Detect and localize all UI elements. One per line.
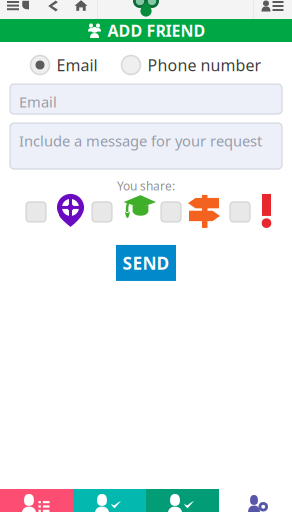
staticText: ADD FRIEND — [107, 20, 205, 41]
staticText: You share: — [117, 178, 175, 194]
button[interactable]: Invites — [146, 489, 219, 512]
button[interactable]: Requests — [73, 489, 146, 512]
button[interactable]: Back — [43, 0, 63, 19]
button[interactable]: Share education — [92, 202, 112, 222]
button[interactable]: Home — [71, 0, 91, 19]
staticText: Phone number — [147, 54, 261, 76]
staticText: Email — [19, 92, 57, 111]
staticText: Include a message for your request — [19, 131, 262, 150]
button[interactable]: Contacts — [260, 0, 286, 19]
button[interactable]: Recents — [6, 0, 30, 19]
staticText: Email — [56, 54, 97, 76]
button[interactable]: Nearby — [219, 489, 292, 512]
button[interactable]: Friends — [0, 489, 73, 512]
button[interactable]: Phone number — [121, 54, 261, 76]
button[interactable]: Share directions — [161, 202, 181, 222]
button[interactable]: SEND — [116, 245, 176, 281]
button[interactable]: Share alerts — [230, 202, 250, 222]
button[interactable]: Email — [30, 54, 97, 76]
staticText: SEND — [122, 251, 169, 274]
button[interactable]: Share location — [26, 202, 46, 222]
